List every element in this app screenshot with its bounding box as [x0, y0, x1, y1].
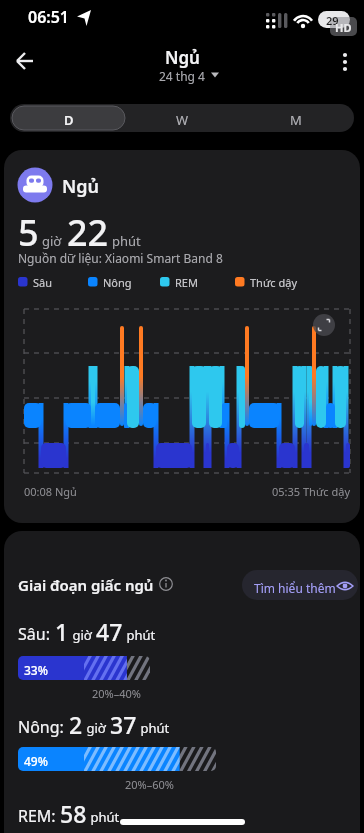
staticText: phút: [123, 626, 156, 644]
staticText: 49%: [24, 753, 48, 769]
staticText: 58: [60, 798, 87, 829]
staticText: D: [64, 111, 74, 129]
staticText: 06:51: [28, 6, 70, 28]
staticText: 20%–40%: [92, 686, 141, 701]
staticText: 33%: [24, 662, 48, 678]
staticText: Sâu:: [18, 623, 55, 645]
staticText: W: [176, 111, 189, 129]
staticText: 22: [67, 208, 109, 257]
staticText: M: [290, 111, 302, 129]
staticText: Nông:: [18, 716, 69, 738]
staticText: giờ: [69, 626, 96, 644]
staticText: Nông: [103, 275, 132, 290]
staticText: REM:: [18, 805, 60, 827]
staticText: Sâu: [33, 275, 53, 290]
staticText: Ngủ: [165, 46, 200, 69]
staticText: HD: [335, 20, 352, 35]
staticText: 37: [110, 709, 137, 740]
staticText: REM: [175, 275, 198, 290]
staticText: 29: [326, 13, 339, 28]
staticText: phút: [137, 719, 170, 737]
staticText: 1: [55, 616, 69, 647]
staticText: giờ: [42, 232, 62, 250]
staticText: 5: [18, 208, 39, 257]
staticText: giờ: [83, 719, 110, 737]
staticText: 24 thg 4: [159, 68, 205, 84]
staticText: phút: [87, 808, 120, 826]
staticText: 05:35 Thức dậy: [272, 484, 350, 499]
staticText: 20%–60%: [125, 777, 174, 792]
staticText: 00:08 Ngủ: [24, 484, 77, 499]
staticText: phút: [112, 232, 141, 250]
staticText: 2: [69, 709, 83, 740]
staticText: Giai đoạn giấc ngủ: [18, 575, 154, 595]
staticText: Nguồn dữ liệu: Xiaomi Smart Band 8: [18, 250, 223, 266]
staticText: Tìm hiểu thêm: [254, 580, 336, 596]
staticText: 47: [96, 616, 123, 647]
staticText: Ngủ: [62, 174, 100, 199]
staticText: Thức dậy: [250, 275, 298, 290]
